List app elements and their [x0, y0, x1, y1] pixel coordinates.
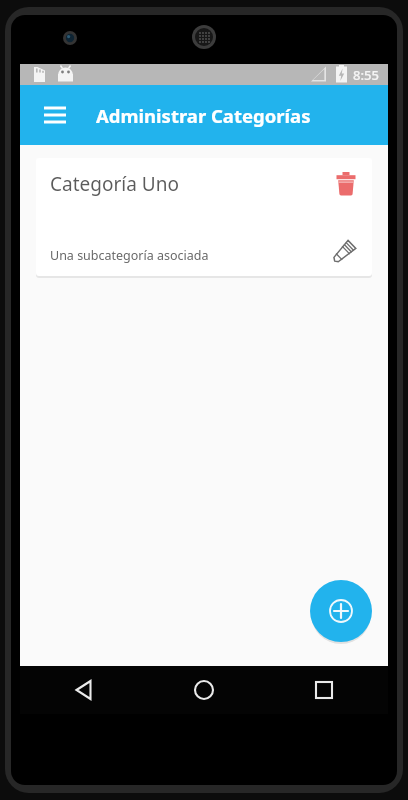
staticText: Una subcategoría asociada [50, 247, 209, 264]
staticText: Administrar Categorías [96, 103, 311, 128]
button[interactable]: Delete category [329, 167, 363, 201]
button[interactable]: Home [184, 670, 224, 710]
button[interactable]: Recent apps [304, 670, 344, 710]
button[interactable]: Categoría Uno [36, 158, 372, 276]
button[interactable]: Back [64, 670, 104, 710]
button[interactable]: Edit category [326, 234, 362, 270]
button[interactable]: Open navigation menu [38, 98, 72, 132]
button[interactable]: Add category [310, 580, 372, 642]
staticText: Categoría Uno [50, 171, 179, 197]
staticText: 8:55 [353, 66, 379, 84]
